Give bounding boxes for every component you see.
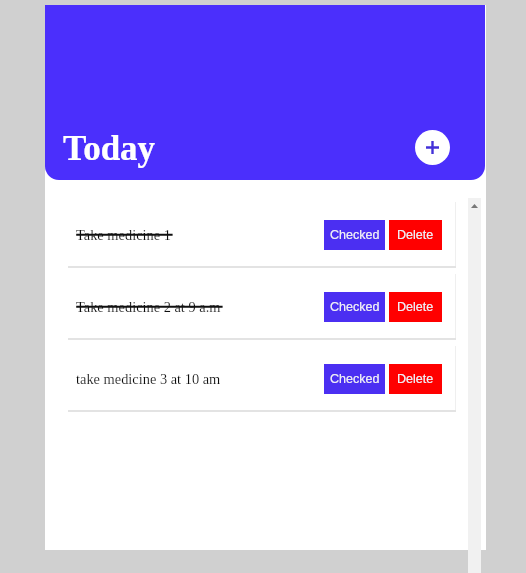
staticText: Take medicine 2 at 9 a.m <box>76 299 221 315</box>
staticText: Checked <box>330 300 380 314</box>
staticText: Checked <box>330 228 380 242</box>
button[interactable]: Delete <box>389 220 442 250</box>
button[interactable]: take medicine 3 at 10 am <box>68 339 456 411</box>
button[interactable]: Delete <box>389 364 442 394</box>
button[interactable]: Add task <box>415 130 450 165</box>
staticText: Checked <box>330 372 380 386</box>
button[interactable]: Take medicine 2 at 9 a.m <box>68 267 456 339</box>
button[interactable]: Checked <box>324 292 385 322</box>
staticText: take medicine 3 at 10 am <box>76 371 221 387</box>
button[interactable]: Take medicine 1 <box>68 195 456 267</box>
button[interactable]: Delete <box>389 292 442 322</box>
staticText: Delete <box>397 228 434 242</box>
staticText: Today <box>63 129 156 168</box>
staticText: Delete <box>397 300 434 314</box>
staticText: Delete <box>397 372 434 386</box>
staticText: Take medicine 1 <box>76 227 171 243</box>
button[interactable]: Checked <box>324 220 385 250</box>
button[interactable]: Checked <box>324 364 385 394</box>
